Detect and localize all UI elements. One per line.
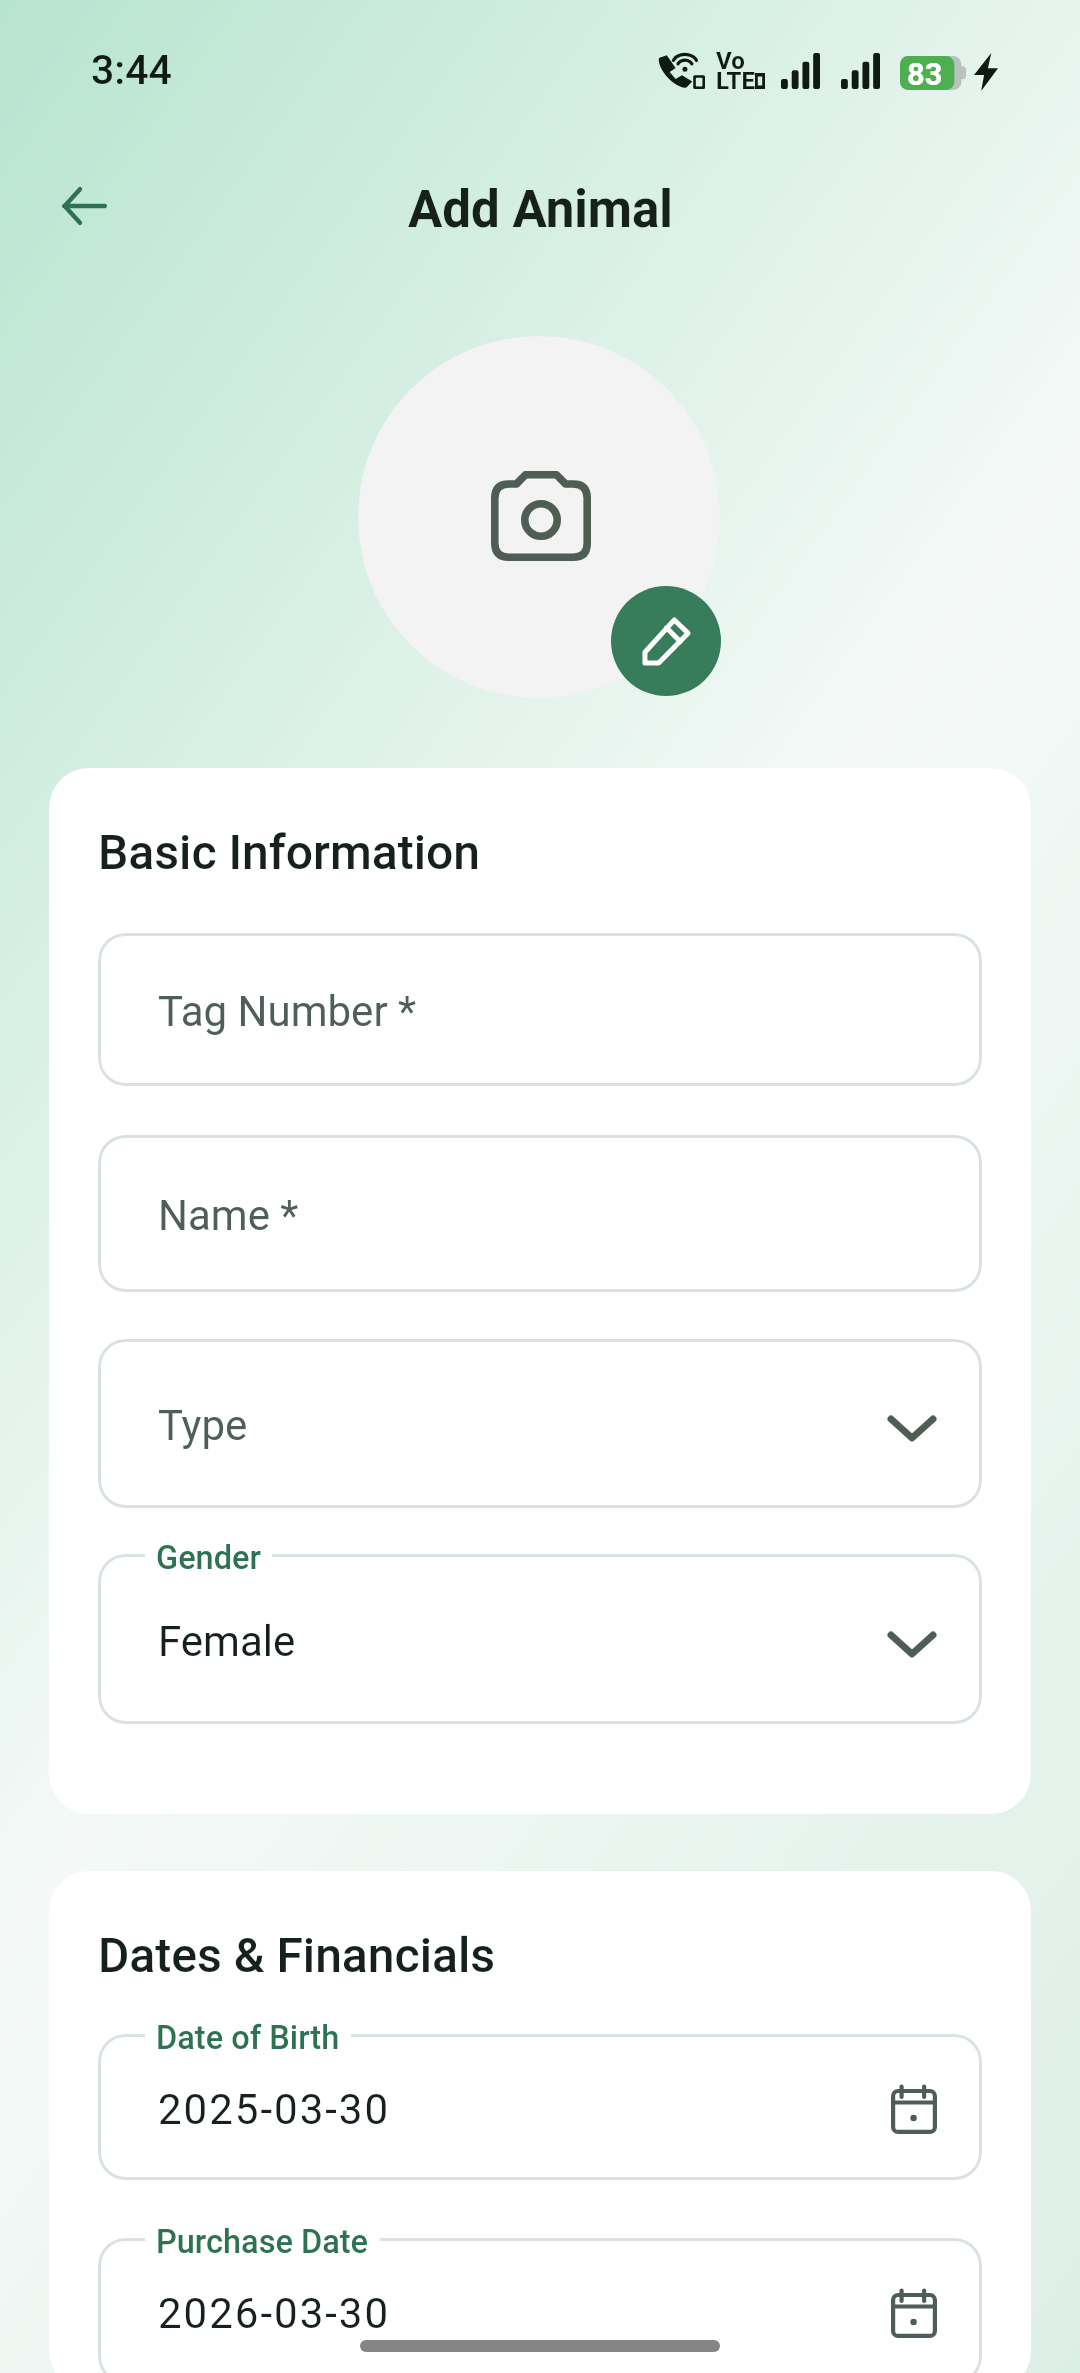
- staticText: 2026-03-30: [158, 2289, 391, 2338]
- staticText: 3:44: [91, 46, 172, 94]
- staticText: Type: [158, 1401, 248, 1450]
- button[interactable]: 2026-03-30: [98, 2238, 982, 2373]
- staticText: Female: [158, 1617, 296, 1666]
- staticText: Vo: [716, 47, 745, 75]
- staticText: Purchase Date: [156, 2223, 369, 2261]
- button[interactable]: Name *: [98, 1135, 982, 1292]
- button[interactable]: Female: [98, 1554, 982, 1724]
- staticText: Date of Birth: [156, 2019, 340, 2057]
- button[interactable]: 2025-03-30: [98, 2034, 982, 2180]
- staticText: 2025-03-30: [158, 2085, 391, 2134]
- staticText: LTE: [716, 67, 755, 95]
- staticText: Tag Number *: [158, 987, 417, 1036]
- staticText: Dates & Financials: [98, 1927, 496, 1983]
- button[interactable]: Type: [98, 1339, 982, 1508]
- staticText: Name *: [158, 1191, 299, 1240]
- button[interactable]: Edit photo: [611, 586, 721, 696]
- button[interactable]: Add photo: [358, 336, 720, 698]
- staticText: Basic Information: [98, 824, 481, 880]
- staticText: Add Animal: [408, 180, 673, 240]
- button[interactable]: Back: [36, 158, 132, 254]
- staticText: Gender: [156, 1539, 261, 1577]
- staticText: 83: [907, 56, 943, 90]
- button[interactable]: Tag Number *: [98, 933, 982, 1086]
